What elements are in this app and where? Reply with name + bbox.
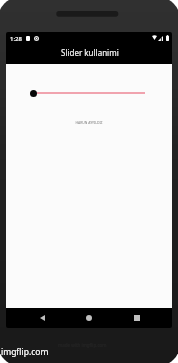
staticText: imgflip.com	[1, 346, 49, 358]
button[interactable]: Back	[34, 310, 50, 326]
staticText: 1:28	[10, 35, 22, 43]
staticText: Slider kullanimi	[61, 47, 119, 58]
staticText: HARUN AYYILDIZ	[6, 120, 172, 125]
button[interactable]: Recent apps	[129, 310, 145, 326]
button[interactable]: Home	[81, 310, 97, 326]
button[interactable]	[6, 82, 172, 102]
